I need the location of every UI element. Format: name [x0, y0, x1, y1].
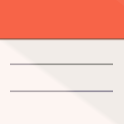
- button[interactable]: Note page: [0, 0, 124, 124]
